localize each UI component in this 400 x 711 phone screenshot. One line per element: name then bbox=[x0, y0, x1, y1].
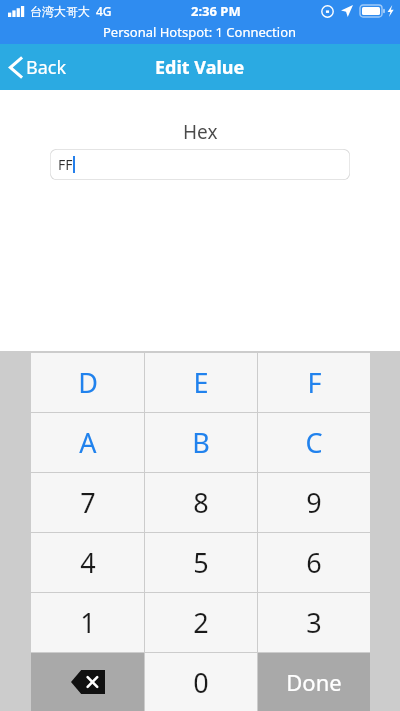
staticText: F bbox=[307, 364, 322, 401]
staticText: Edit Value bbox=[155, 55, 245, 80]
button[interactable]: 6 bbox=[258, 533, 370, 592]
staticText: 2:36 PM bbox=[191, 2, 241, 20]
button[interactable]: Done bbox=[258, 653, 370, 711]
button[interactable]: 3 bbox=[258, 593, 370, 652]
button[interactable]: A bbox=[31, 413, 144, 472]
button[interactable]: B bbox=[145, 413, 257, 472]
button[interactable]: C bbox=[258, 413, 370, 472]
button[interactable]: F bbox=[258, 353, 370, 412]
staticText: B bbox=[192, 424, 210, 461]
button[interactable]: FF bbox=[50, 149, 350, 180]
staticText: 1 bbox=[80, 604, 96, 641]
button[interactable]: 8 bbox=[145, 473, 257, 532]
staticText: Done bbox=[286, 667, 342, 697]
staticText: Hex bbox=[183, 119, 218, 145]
button[interactable]: 0 bbox=[145, 653, 257, 711]
staticText: Personal Hotspot: 1 Connection bbox=[103, 23, 297, 41]
staticText: 9 bbox=[306, 484, 322, 521]
staticText: 2 bbox=[193, 604, 209, 641]
staticText: 8 bbox=[193, 484, 209, 521]
staticText: 3 bbox=[306, 604, 322, 641]
staticText: D bbox=[78, 364, 98, 401]
staticText: A bbox=[79, 424, 97, 461]
button[interactable]: 1 bbox=[31, 593, 144, 652]
staticText: 7 bbox=[80, 484, 96, 521]
button[interactable]: 5 bbox=[145, 533, 257, 592]
button[interactable]: 4 bbox=[31, 533, 144, 592]
button[interactable]: 2 bbox=[145, 593, 257, 652]
staticText: Back bbox=[26, 55, 67, 80]
button[interactable]: Back bbox=[0, 49, 77, 86]
button[interactable]: E bbox=[145, 353, 257, 412]
staticText: 0 bbox=[193, 664, 209, 701]
button[interactable]: D bbox=[31, 353, 144, 412]
staticText: 5 bbox=[193, 544, 209, 581]
staticText: FF bbox=[58, 155, 73, 174]
staticText: 台湾大哥大 bbox=[30, 4, 90, 19]
button[interactable]: Backspace bbox=[31, 653, 144, 711]
staticText: 4G bbox=[96, 3, 112, 19]
staticText: 4 bbox=[80, 544, 96, 581]
button[interactable]: 7 bbox=[31, 473, 144, 532]
staticText: E bbox=[193, 364, 209, 401]
staticText: C bbox=[305, 424, 323, 461]
staticText: 6 bbox=[306, 544, 322, 581]
button[interactable]: 9 bbox=[258, 473, 370, 532]
